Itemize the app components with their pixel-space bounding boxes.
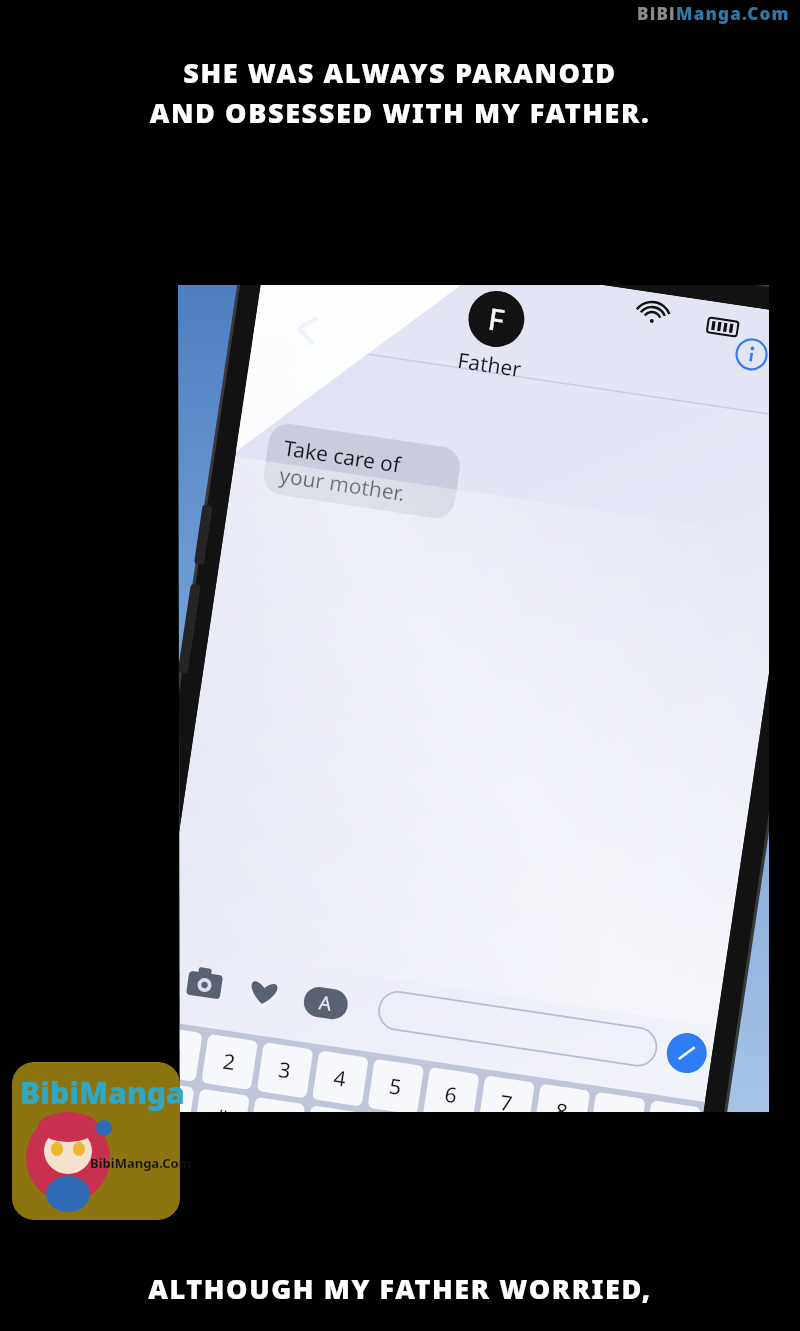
button[interactable]: Back	[205, 395, 245, 440]
button[interactable]: Message input	[560, 950, 750, 1005]
button[interactable]: Father contact	[400, 330, 470, 420]
button[interactable]: Camera	[352, 980, 402, 1025]
button[interactable]: BibiManga logo	[12, 1062, 180, 1220]
button[interactable]: Stickers	[412, 972, 460, 1017]
button[interactable]: Send	[745, 925, 795, 975]
button[interactable]: Text formatting	[475, 965, 530, 1010]
